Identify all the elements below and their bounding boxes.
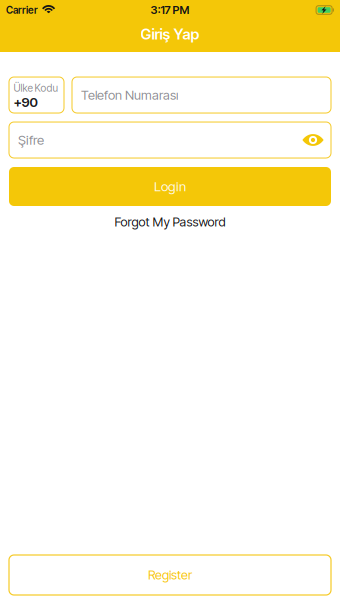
button[interactable]: Ülke Kodu [9,77,64,113]
staticText: +90 [13,94,37,110]
button[interactable]: Telefon Numarası [72,77,331,113]
button[interactable]: Şifre [9,122,331,158]
staticText: Telefon Numarası [81,87,178,103]
staticText: Carrier [6,4,38,16]
staticText: Login [154,178,186,194]
staticText: Register [148,567,192,583]
staticText: Ülke Kodu [13,82,57,94]
staticText: Giriş Yap [140,25,199,43]
button[interactable]: Forgot My Password [9,211,331,233]
button[interactable]: Login [9,167,331,206]
staticText: 3:17 PM [150,3,189,17]
staticText: Şifre [18,132,44,148]
button[interactable]: Register [9,555,331,595]
button[interactable]: Show password [299,125,327,155]
staticText: Forgot My Password [114,214,225,230]
